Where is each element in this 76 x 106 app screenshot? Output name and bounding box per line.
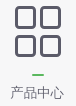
staticText: 产品中心 xyxy=(10,84,64,101)
button[interactable]: Tile 2 xyxy=(40,6,61,29)
button[interactable]: Tile 3 xyxy=(15,35,36,57)
button[interactable]: Tile 4 xyxy=(40,35,61,57)
button[interactable]: Tile 1 xyxy=(15,6,36,29)
